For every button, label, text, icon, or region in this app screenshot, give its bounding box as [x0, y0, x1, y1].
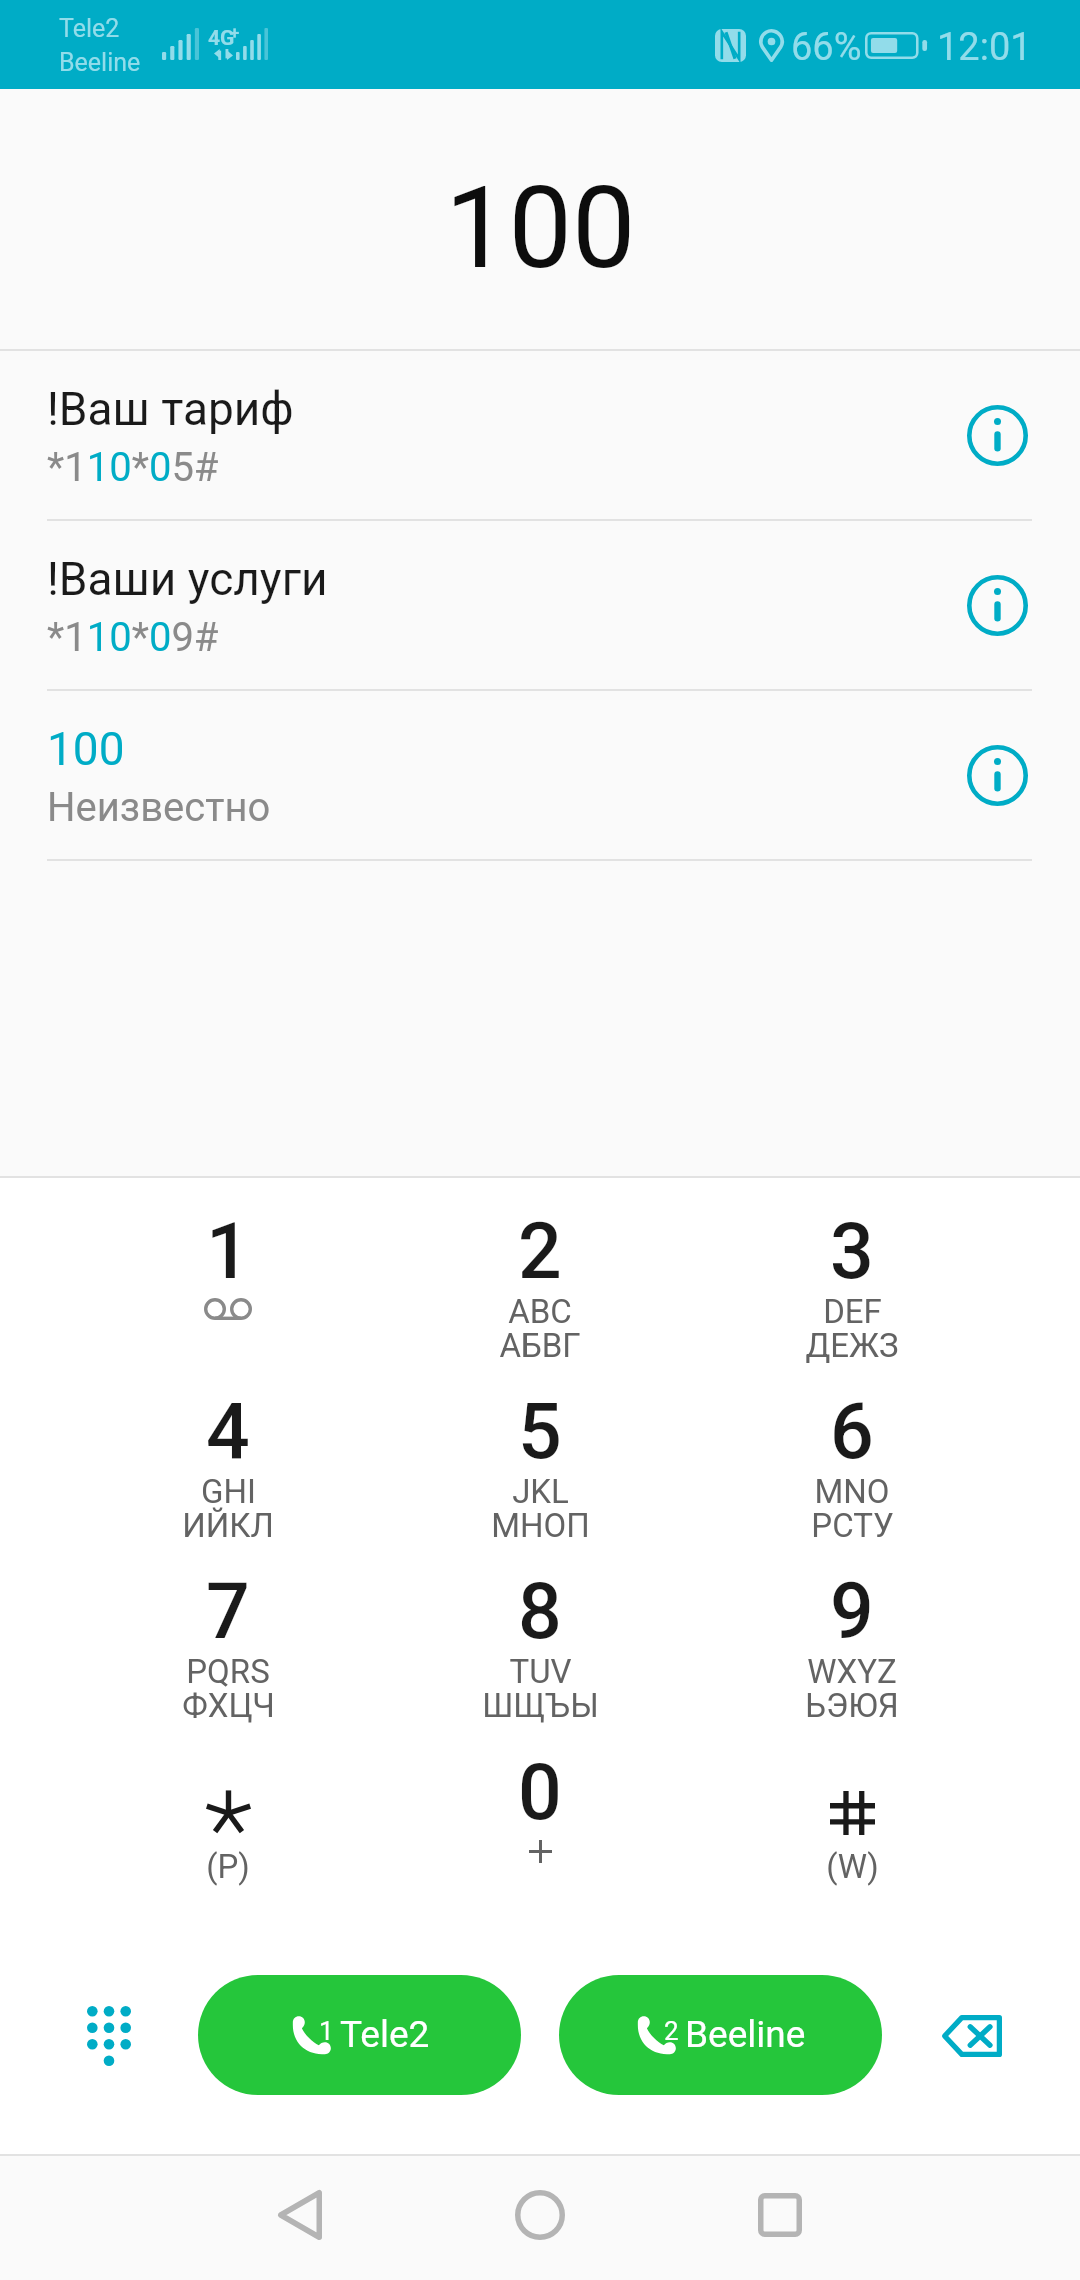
staticText: 100	[445, 162, 636, 294]
button[interactable]: Информация	[949, 727, 1045, 823]
staticText: 0	[518, 1748, 562, 1838]
staticText: 2	[518, 1207, 562, 1297]
staticText: 4	[206, 1387, 250, 1477]
staticText: ИЙКЛ	[182, 1506, 274, 1545]
staticText: Tele2	[59, 14, 120, 43]
button[interactable]: 4	[72, 1387, 384, 1567]
button[interactable]: 1	[198, 1975, 521, 2095]
staticText: +	[230, 23, 240, 43]
button[interactable]: Информация	[949, 557, 1045, 653]
staticText: 9	[830, 1567, 874, 1657]
button[interactable]: 2	[384, 1207, 696, 1387]
staticText: ДЕЖЗ	[805, 1326, 899, 1365]
button[interactable]: 1	[72, 1207, 384, 1387]
staticText: 1	[206, 1207, 250, 1297]
button[interactable]: 100	[0, 691, 1080, 859]
staticText: МНОП	[491, 1506, 590, 1545]
staticText: ШЩЪЫ	[482, 1686, 599, 1725]
staticText: MNO	[814, 1472, 890, 1511]
staticText: *110*05#	[47, 444, 219, 491]
button[interactable]: 3	[696, 1207, 1008, 1387]
staticText: 6	[830, 1387, 874, 1477]
staticText: ABC	[508, 1292, 572, 1331]
button[interactable]: (W)	[696, 1748, 1008, 1928]
staticText: 4G	[208, 26, 235, 51]
button[interactable]: Удалить	[927, 1990, 1017, 2080]
staticText: 7	[206, 1567, 250, 1657]
button[interactable]: 5	[384, 1387, 696, 1567]
staticText: Неизвестно	[47, 784, 271, 831]
staticText: GHI	[201, 1472, 256, 1511]
staticText: DEF	[823, 1292, 882, 1331]
button[interactable]: 2	[559, 1975, 882, 2095]
staticText: (P)	[206, 1847, 250, 1886]
button[interactable]: 0	[384, 1748, 696, 1928]
staticText: РСТУ	[811, 1506, 894, 1545]
staticText: АБВГ	[499, 1326, 581, 1365]
staticText: 66%	[791, 25, 862, 70]
button[interactable]: 100	[0, 89, 1080, 349]
staticText: PQRS	[186, 1652, 270, 1691]
staticText: TUV	[509, 1652, 572, 1691]
staticText: 8	[518, 1567, 562, 1657]
button[interactable]: 9	[696, 1567, 1008, 1747]
staticText: ФХЦЧ	[182, 1686, 275, 1725]
staticText: *110*09#	[47, 614, 219, 661]
button[interactable]: Клавиатура	[61, 1989, 157, 2085]
button[interactable]: (P)	[72, 1748, 384, 1928]
staticText: JKL	[512, 1472, 569, 1511]
button[interactable]: Информация	[949, 387, 1045, 483]
button[interactable]: !Ваш тариф	[0, 351, 1080, 519]
staticText: 100	[47, 722, 125, 776]
staticText: WXYZ	[807, 1652, 897, 1691]
staticText: 5	[518, 1387, 562, 1477]
button[interactable]: 7	[72, 1567, 384, 1747]
staticText: !Ваш тариф	[47, 382, 294, 436]
staticText: Beeline	[685, 2013, 806, 2056]
staticText: !Ваши услуги	[47, 552, 328, 606]
button[interactable]: Домой	[480, 2155, 600, 2275]
staticText: 12:01	[937, 25, 1032, 70]
staticText: 3	[830, 1207, 874, 1297]
button[interactable]: !Ваши услуги	[0, 521, 1080, 689]
button[interactable]: 8	[384, 1567, 696, 1747]
staticText: Beeline	[59, 48, 141, 77]
button[interactable]: Назад	[240, 2155, 360, 2275]
staticText: Tele2	[340, 2013, 430, 2056]
button[interactable]: 6	[696, 1387, 1008, 1567]
staticText: (W)	[826, 1847, 879, 1886]
staticText: 2	[664, 2016, 679, 2046]
staticText: ЬЭЮЯ	[805, 1686, 899, 1725]
staticText: 1	[319, 2016, 334, 2046]
button[interactable]: Недавние	[720, 2155, 840, 2275]
